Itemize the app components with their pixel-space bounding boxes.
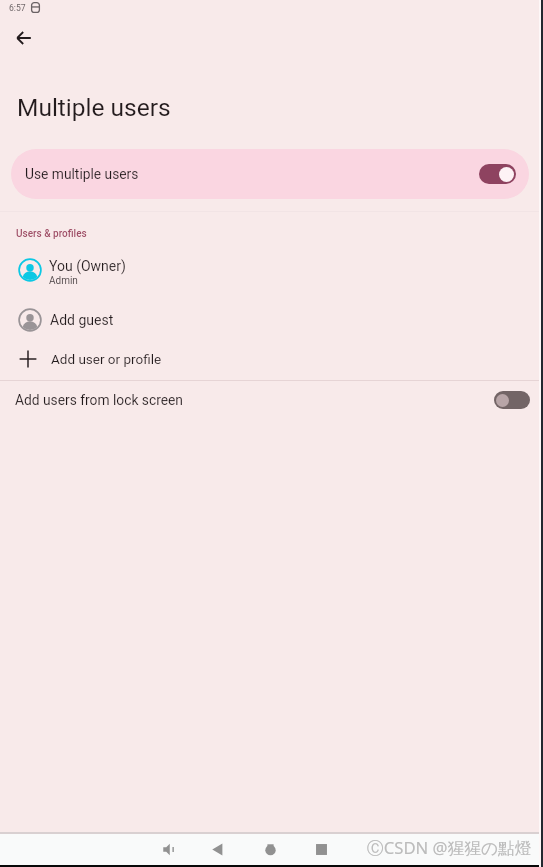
button[interactable]: Recents xyxy=(309,837,333,861)
staticText: You (Owner) xyxy=(49,258,126,274)
button[interactable]: Add guest xyxy=(0,305,543,335)
staticText: 6:57 xyxy=(9,3,26,13)
staticText: Users & profiles xyxy=(16,228,87,240)
button[interactable]: Use multiple users xyxy=(11,149,529,199)
button[interactable]: Home xyxy=(258,837,282,861)
button[interactable]: You (Owner) xyxy=(0,250,543,290)
staticText: Use multiple users xyxy=(25,166,139,182)
button[interactable]: Back xyxy=(206,837,230,861)
button[interactable]: Add user or profile xyxy=(0,345,543,373)
staticText: Add users from lock screen xyxy=(15,392,183,408)
button[interactable]: Back xyxy=(7,21,41,55)
button[interactable]: Add users from lock screen xyxy=(0,381,543,418)
staticText: Add user or profile xyxy=(51,351,162,367)
button[interactable]: Add users from lock screen xyxy=(494,391,530,409)
staticText: Admin xyxy=(49,275,78,287)
staticText: Multiple users xyxy=(17,93,171,122)
button[interactable]: Use multiple users xyxy=(479,164,516,184)
button[interactable]: Volume xyxy=(157,837,181,861)
staticText: Add guest xyxy=(50,312,114,328)
staticText: ⒸCSDN @猩猩の點燈 xyxy=(367,836,532,859)
